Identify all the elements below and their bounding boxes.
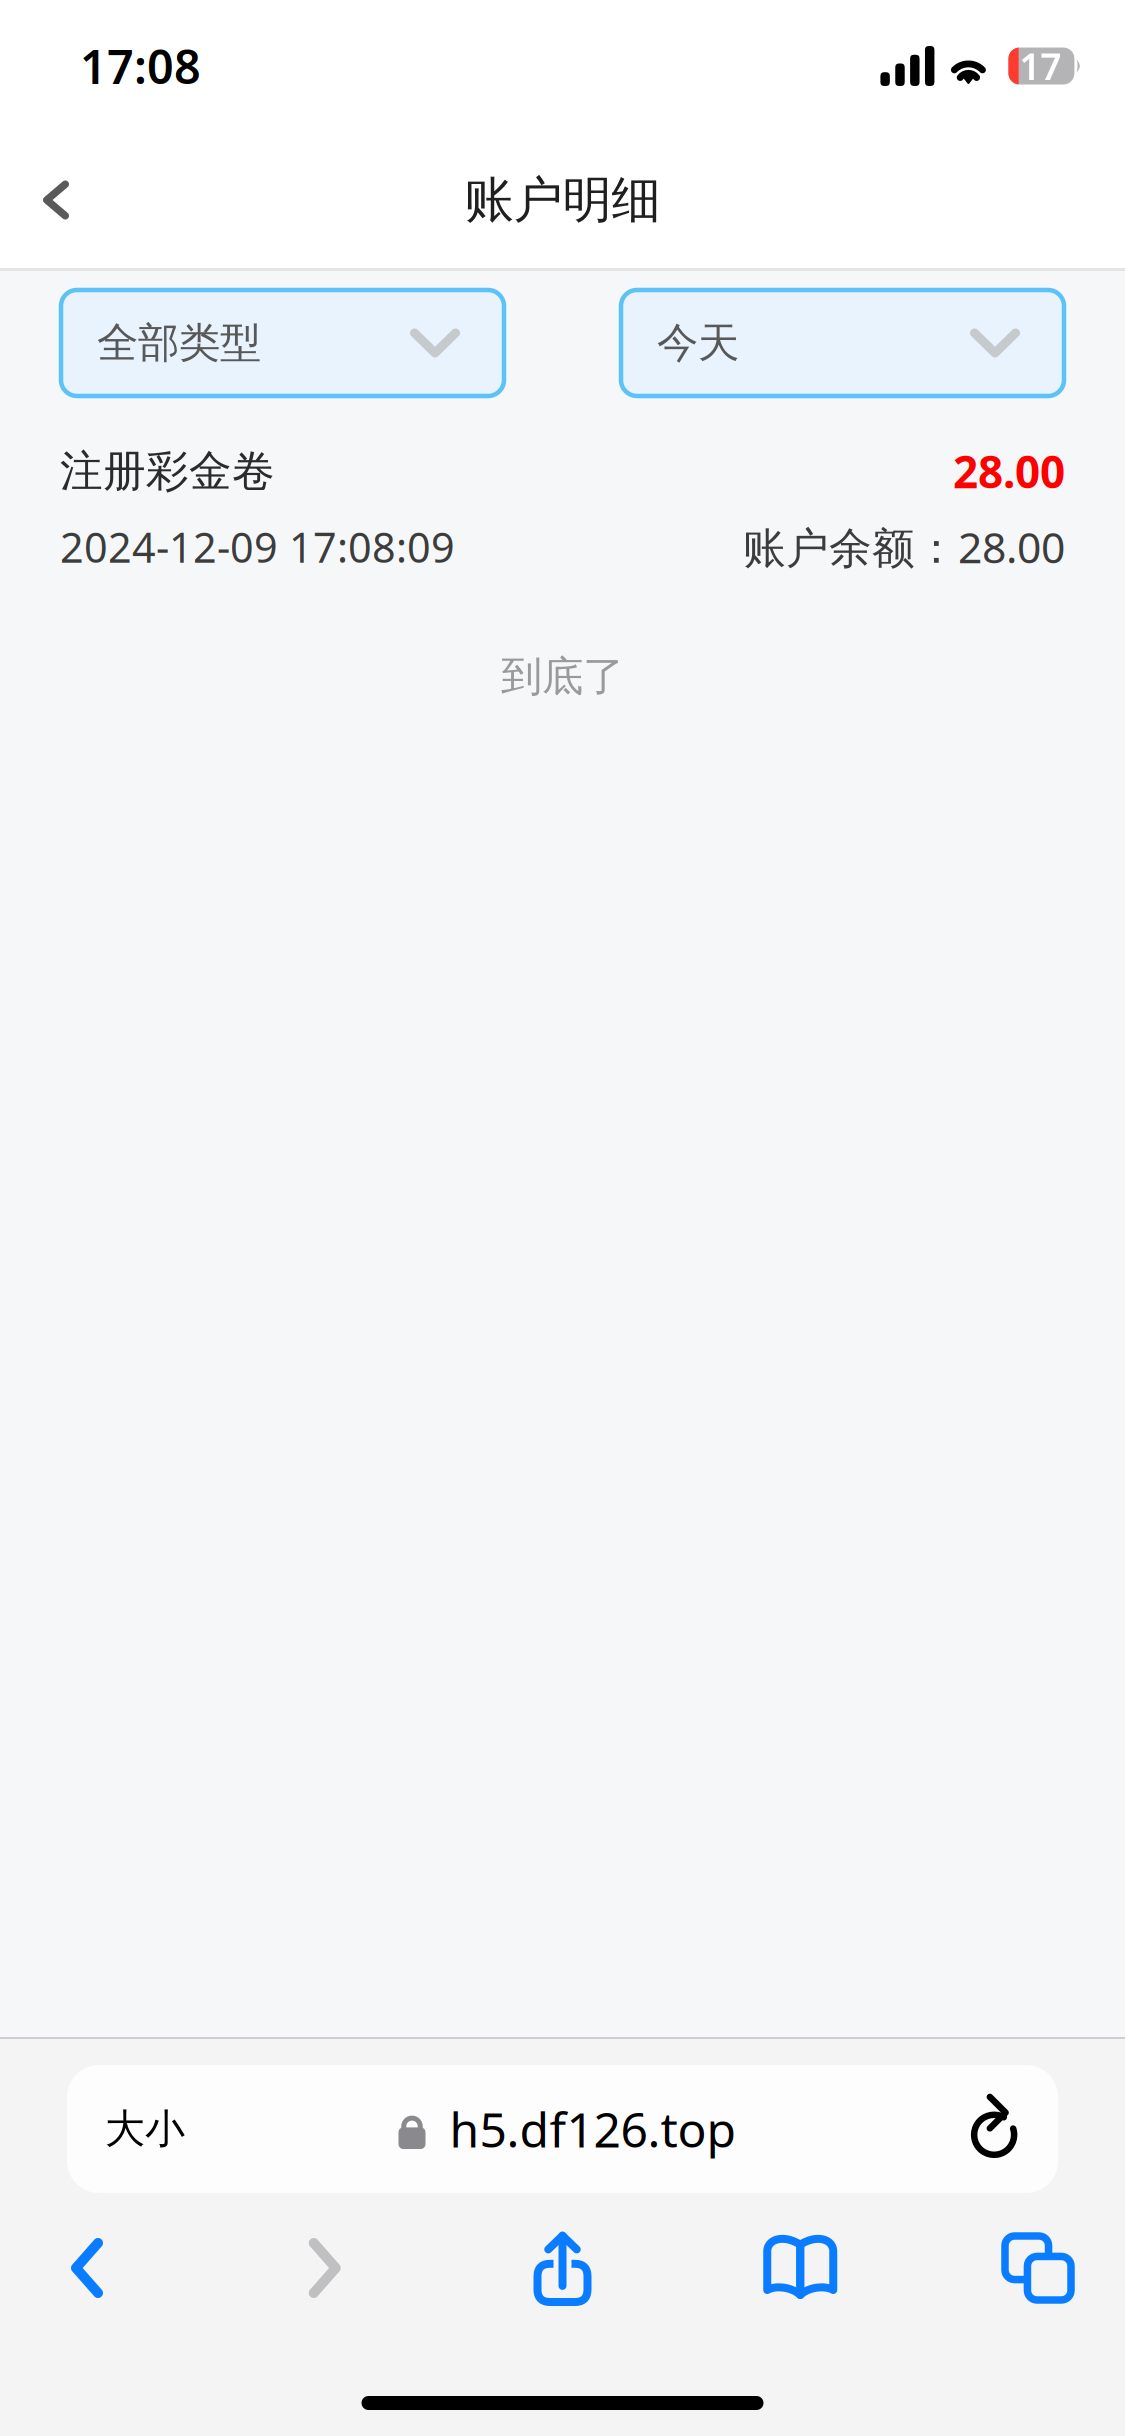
button[interactable]: 全部类型	[61, 290, 504, 396]
button[interactable]: Back	[0, 144, 112, 256]
button[interactable]: 今天	[621, 290, 1064, 396]
button[interactable]: Tabs	[973, 2213, 1103, 2323]
button[interactable]: Forward	[260, 2213, 390, 2323]
button[interactable]: Share	[497, 2213, 627, 2323]
staticText: 2024-12-09 17:08:09	[60, 519, 455, 574]
staticText: 账户余额：28.00	[743, 518, 1065, 575]
button[interactable]: 大小	[105, 2073, 217, 2185]
staticText: 17	[1019, 41, 1061, 91]
button[interactable]: Reload	[920, 2073, 1024, 2185]
button[interactable]: h5.df126.top	[398, 2073, 736, 2185]
button[interactable]: Back	[22, 2213, 152, 2323]
staticText: 今天	[657, 318, 739, 368]
staticText: 17:08	[80, 35, 201, 97]
button[interactable]: Bookmarks	[735, 2213, 865, 2323]
staticText: h5.df126.top	[449, 2097, 736, 2161]
staticText: 大小	[105, 2104, 185, 2153]
staticText: 全部类型	[97, 318, 261, 368]
staticText: 账户明细	[464, 170, 660, 230]
staticText: 28.00	[953, 442, 1065, 500]
staticText: 注册彩金卷	[60, 445, 275, 497]
staticText: 到底了	[501, 651, 624, 702]
